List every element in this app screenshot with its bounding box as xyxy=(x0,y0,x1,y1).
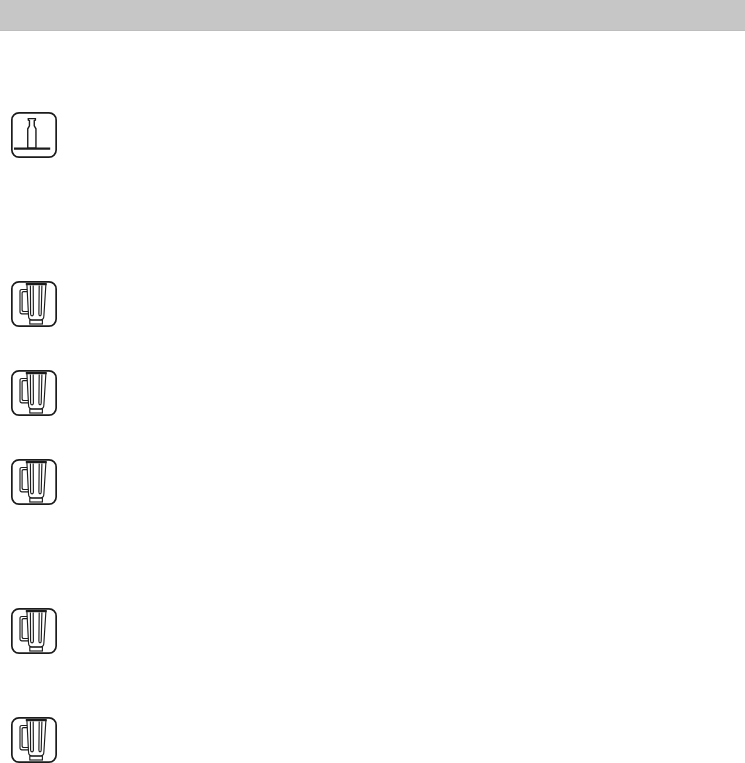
button[interactable]: Milkshake xyxy=(0,370,745,459)
button[interactable]: Green juice xyxy=(0,608,745,697)
button[interactable]: Lemonade xyxy=(0,459,745,548)
button[interactable]: Olive oil xyxy=(0,112,745,193)
button[interactable]: Protein shake xyxy=(0,717,745,763)
button[interactable]: Smoothie xyxy=(0,281,745,370)
